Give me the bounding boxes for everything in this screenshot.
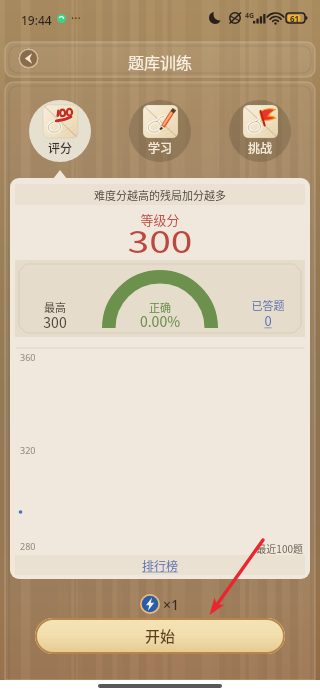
staticText: 排行榜 — [142, 557, 179, 574]
staticText: ×1 — [163, 595, 180, 614]
staticText: 4G — [245, 11, 255, 21]
staticText: ··· — [71, 10, 81, 26]
staticText: 360 — [20, 351, 36, 363]
staticText: 最近100题 — [246, 541, 303, 555]
staticText: 评分 — [48, 139, 73, 156]
button[interactable]: 学习 — [129, 100, 191, 162]
button[interactable]: 挑战 — [229, 100, 291, 162]
staticText: 题库训练 — [0, 50, 320, 73]
staticText: 已答题 — [243, 297, 293, 313]
staticText: 开始 — [145, 625, 176, 647]
staticText: 280 — [20, 540, 36, 552]
button[interactable]: 0 — [243, 311, 293, 330]
button[interactable]: 开始 — [35, 618, 285, 654]
button[interactable]: Back — [18, 48, 39, 69]
staticText: 61 — [290, 13, 300, 24]
staticText: 最高 — [35, 299, 75, 315]
staticText: 300 — [10, 218, 310, 261]
staticText: 挑战 — [248, 139, 273, 156]
staticText: 0.00% — [15, 311, 305, 331]
staticText: 300 — [35, 312, 75, 332]
staticText: 320 — [20, 444, 36, 456]
staticText: 难度分越高的残局加分越多 — [94, 187, 226, 203]
staticText: 学习 — [148, 139, 173, 156]
staticText: 等级分 — [10, 210, 310, 229]
staticText: 19:44 — [21, 12, 52, 28]
button[interactable]: 排行榜 — [15, 555, 305, 575]
staticText: 正确 — [15, 299, 305, 315]
button[interactable]: 评分 — [29, 100, 91, 162]
